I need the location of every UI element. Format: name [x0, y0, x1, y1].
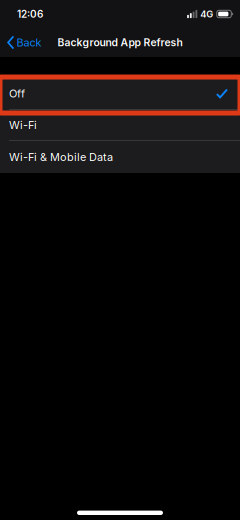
button[interactable]: Off	[0, 78, 240, 109]
button[interactable]: Back	[0, 28, 50, 57]
staticText: Background App Refresh	[57, 36, 182, 49]
staticText: Wi-Fi & Mobile Data	[9, 150, 113, 164]
staticText: 4G	[200, 8, 213, 20]
staticText: 12:06	[17, 8, 43, 20]
staticText: Off	[9, 87, 25, 100]
staticText: Wi-Fi	[9, 118, 37, 132]
button[interactable]: Wi-Fi & Mobile Data	[0, 141, 240, 173]
staticText: Back	[17, 36, 42, 49]
button[interactable]: Wi-Fi	[0, 110, 240, 140]
